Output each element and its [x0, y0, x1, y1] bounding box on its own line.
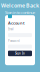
staticText: Password [8, 39, 20, 43]
staticText: Welcome Back [1, 2, 39, 9]
staticText: Email [8, 27, 14, 31]
staticText: Account [8, 20, 25, 25]
staticText: Sign In [15, 52, 25, 55]
staticText: Sign in to continue [5, 10, 35, 15]
button[interactable]: Sign In [8, 51, 32, 56]
